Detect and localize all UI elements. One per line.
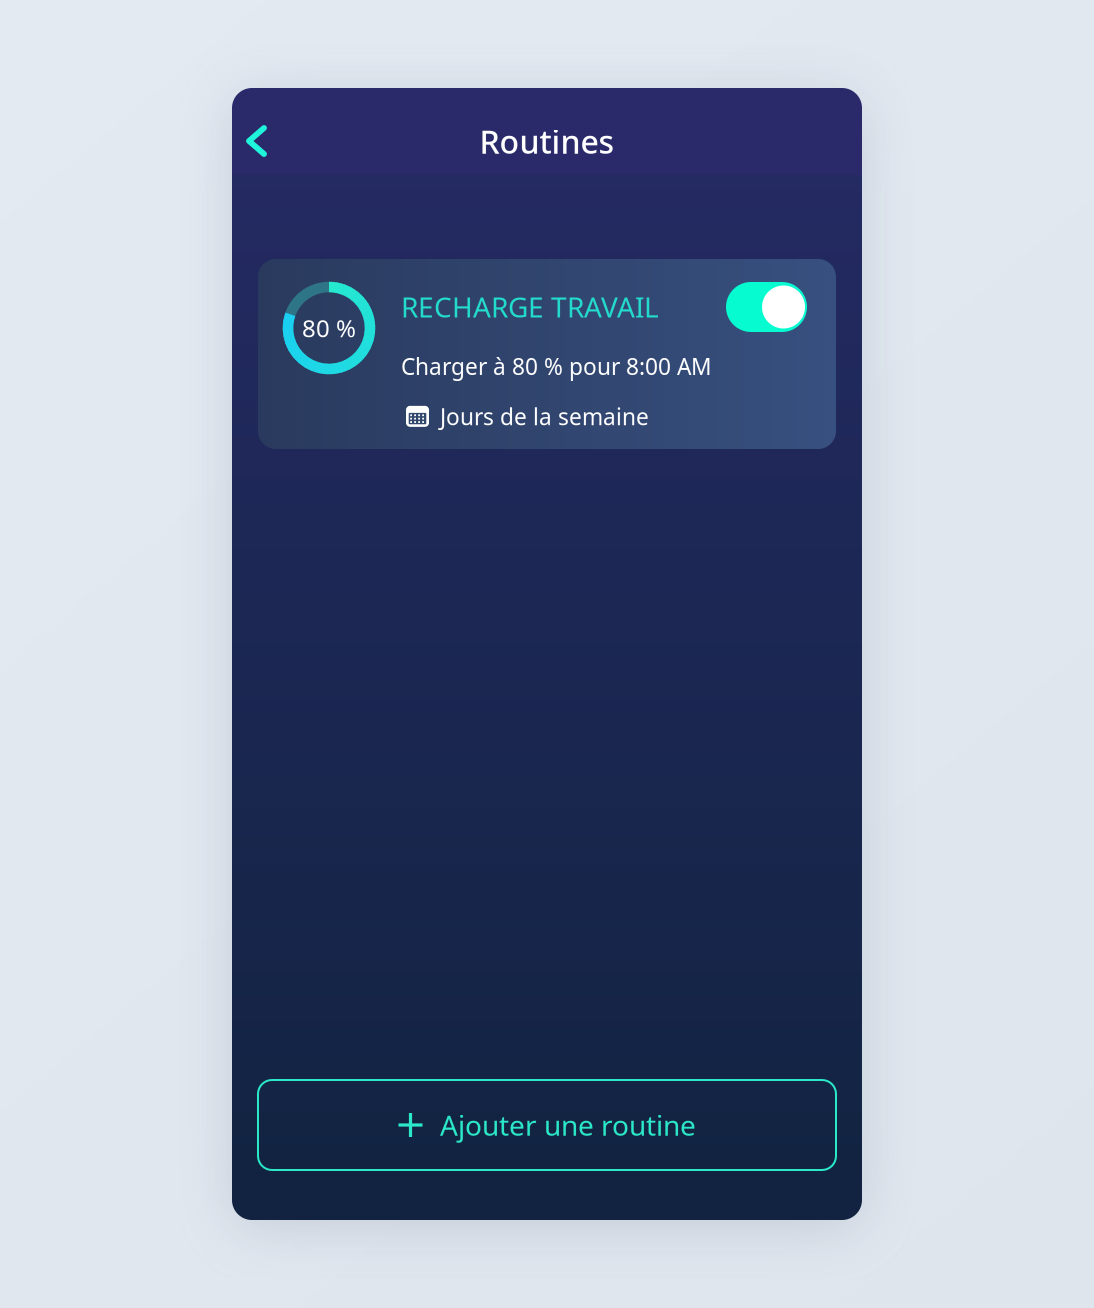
staticText: Routines <box>479 120 614 162</box>
staticText: RECHARGE TRAVAIL <box>401 288 659 325</box>
button[interactable]: Back <box>233 117 284 165</box>
staticText: Charger à 80 % pour 8:00 AM <box>401 351 712 381</box>
staticText: Ajouter une routine <box>440 1106 696 1144</box>
button[interactable]: Activer la routine <box>726 282 807 332</box>
button[interactable]: 80 % <box>258 259 836 449</box>
staticText: 80 % <box>302 312 356 344</box>
staticText: Jours de la semaine <box>440 401 649 431</box>
button[interactable]: Ajouter une routine <box>258 1080 836 1170</box>
